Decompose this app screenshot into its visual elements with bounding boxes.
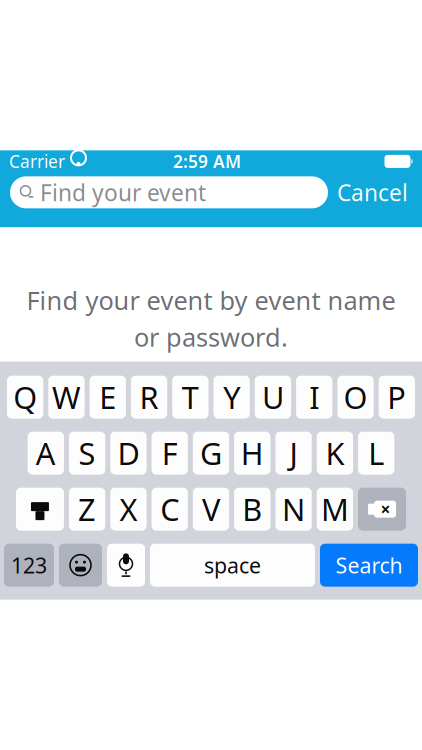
button[interactable]: I [296, 376, 332, 419]
staticText: A [36, 433, 56, 473]
staticText: X [119, 489, 137, 529]
button[interactable]: E [90, 376, 126, 419]
staticText: L [368, 433, 384, 473]
staticText: V [202, 489, 220, 529]
button[interactable]: Emoji [59, 544, 102, 587]
button[interactable]: K [317, 432, 353, 475]
button[interactable]: space [150, 544, 315, 587]
button[interactable]: T [172, 376, 208, 419]
button[interactable]: B [234, 488, 270, 531]
staticText: K [325, 433, 344, 473]
button[interactable]: G [193, 432, 229, 475]
button[interactable]: Shift [16, 488, 64, 531]
staticText: D [117, 433, 139, 473]
button[interactable]: A [28, 432, 64, 475]
staticText: Q [13, 377, 37, 417]
staticText: Z [78, 489, 96, 529]
staticText: I [309, 377, 319, 417]
staticText: U [262, 377, 284, 417]
staticText: W [52, 377, 81, 417]
staticText: T [182, 377, 199, 417]
staticText: B [242, 489, 262, 529]
button[interactable]: Delete [358, 488, 406, 531]
staticText: Search [335, 551, 402, 579]
staticText: 2:59 AM [173, 150, 241, 173]
staticText: J [290, 433, 298, 473]
button[interactable]: N [275, 488, 312, 531]
button[interactable]: C [151, 488, 188, 531]
staticText: G [200, 433, 222, 473]
button[interactable]: Z [69, 488, 105, 531]
staticText: Y [223, 377, 240, 417]
staticText: H [241, 433, 264, 473]
button[interactable]: V [193, 488, 229, 531]
button[interactable]: L [358, 432, 394, 475]
button[interactable]: M [317, 488, 353, 531]
button[interactable]: W [48, 376, 85, 419]
button[interactable]: D [110, 432, 146, 475]
button[interactable]: Find your event [10, 176, 328, 208]
button[interactable]: Search [320, 544, 418, 587]
staticText: space [204, 551, 261, 579]
button[interactable]: J [275, 432, 312, 475]
button[interactable]: F [151, 432, 188, 475]
staticText: S [79, 433, 96, 473]
staticText: N [282, 489, 305, 529]
staticText: O [343, 377, 367, 417]
button[interactable]: 123 [4, 544, 54, 587]
button[interactable]: O [337, 376, 374, 419]
staticText: or password. [134, 320, 288, 354]
staticText: F [162, 433, 178, 473]
button[interactable]: U [255, 376, 291, 419]
button[interactable]: Dictate [107, 544, 145, 587]
button[interactable]: P [379, 376, 415, 419]
staticText: E [99, 377, 116, 417]
staticText: R [139, 377, 158, 417]
button[interactable]: X [110, 488, 146, 531]
button[interactable]: Y [213, 376, 250, 419]
staticText: C [160, 489, 179, 529]
staticText: P [387, 377, 406, 417]
staticText: Cancel [337, 177, 408, 207]
button[interactable]: S [69, 432, 105, 475]
staticText: × [381, 498, 391, 521]
button[interactable]: Cancel [328, 176, 417, 208]
staticText: M [321, 489, 349, 529]
staticText: Find your event [40, 177, 206, 207]
staticText: 123 [11, 551, 47, 579]
button[interactable]: Q [7, 376, 43, 419]
button[interactable]: R [131, 376, 167, 419]
staticText: Carrier [9, 150, 65, 173]
staticText: Find your event by event name [26, 283, 395, 317]
button[interactable]: H [234, 432, 270, 475]
